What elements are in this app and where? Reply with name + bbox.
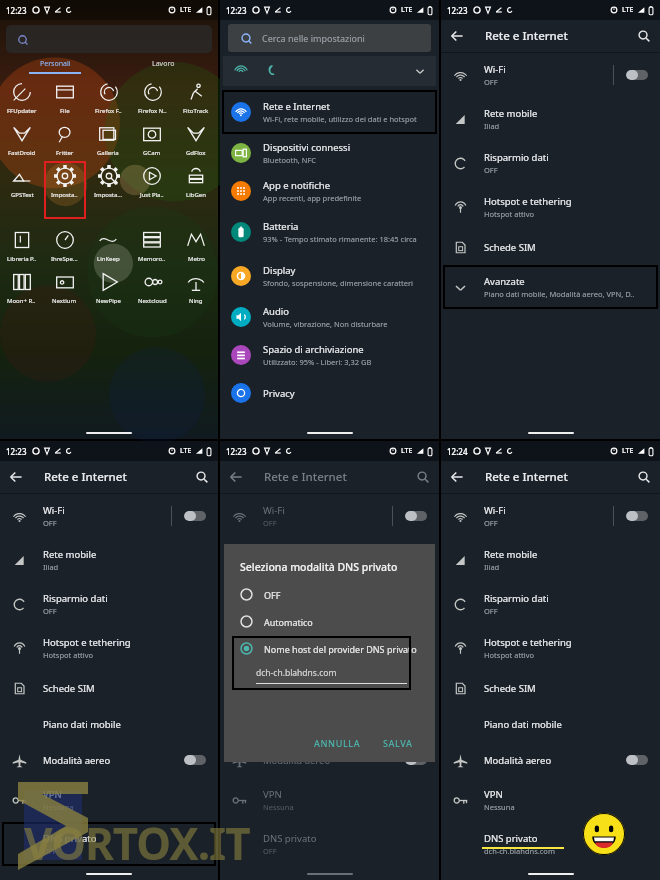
button[interactable]: Firefox F.. [94, 79, 123, 115]
button[interactable]: Display [220, 254, 439, 298]
button[interactable]: Spazio di archiviazione [220, 336, 439, 374]
button[interactable]: Cerca [6, 25, 212, 53]
button[interactable]: GPSTest [9, 163, 35, 199]
button[interactable]: Dispositivi connessi [220, 134, 439, 172]
button[interactable]: Fritter [52, 121, 78, 157]
button[interactable]: VPN [0, 778, 218, 822]
button[interactable]: Indietro [441, 461, 473, 493]
button[interactable]: Wi-Fi toggle [626, 511, 648, 521]
button[interactable]: Indietro [220, 461, 252, 493]
button[interactable]: FitoTrack [182, 79, 210, 115]
button[interactable]: Wi-Fi toggle [184, 511, 206, 521]
button[interactable]: Metro [183, 227, 209, 263]
button[interactable]: Indietro [0, 461, 32, 493]
button[interactable]: Wi-Fi toggle [626, 70, 648, 80]
staticText: VPN [263, 788, 282, 801]
button[interactable]: Modalità aereo toggle [184, 755, 206, 765]
button[interactable]: FFUpdater [6, 79, 38, 115]
button[interactable]: Just Pla.. [139, 163, 165, 199]
button[interactable]: Hotspot e tethering [0, 626, 218, 670]
button[interactable]: Nextium [51, 269, 78, 305]
button[interactable]: VPN [441, 778, 660, 822]
staticText: Schede SIM [484, 682, 536, 695]
button[interactable]: Piano dati mobile [0, 706, 218, 742]
button[interactable]: OFF [240, 588, 419, 601]
button[interactable]: Cerca nelle impostazioni [228, 24, 431, 52]
button[interactable]: Rete e Internet [220, 90, 439, 134]
staticText: OFF [484, 77, 498, 87]
button[interactable]: DNS privato [220, 822, 439, 866]
button[interactable]: Audio [220, 298, 439, 336]
button[interactable]: Risparmio dati [441, 141, 660, 185]
button[interactable]: Imposta... [93, 163, 124, 199]
button[interactable]: Moon+ R.. [6, 269, 37, 305]
button[interactable]: Indietro [441, 20, 473, 52]
button[interactable]: App e notifiche [220, 172, 439, 210]
button[interactable]: VPN [220, 778, 439, 822]
button[interactable]: Rete mobile [0, 538, 218, 582]
button[interactable]: Libreria P.. [6, 227, 38, 263]
button[interactable]: Wi-Fi toggle [405, 511, 427, 521]
button[interactable]: GdFlox [183, 121, 209, 157]
button[interactable]: File [52, 79, 78, 115]
staticText: 12:24 [447, 446, 468, 457]
button[interactable]: Hotspot e tethering [441, 626, 660, 670]
button[interactable]: Cerca [628, 20, 660, 52]
button[interactable]: Batteria [220, 210, 439, 254]
button[interactable]: IhreSpe... [50, 227, 79, 263]
button[interactable]: Modalità aereo [0, 742, 218, 778]
button[interactable]: Hotspot e tethering [220, 626, 439, 670]
button[interactable]: FastDroid [7, 121, 37, 157]
staticText: Hotspot attivo [263, 650, 314, 660]
button[interactable]: Risparmio dati [220, 582, 439, 626]
button[interactable]: Piano dati mobile [220, 706, 439, 742]
button[interactable]: Firefox N.. [137, 79, 168, 115]
button[interactable]: Schede SIM [0, 670, 218, 706]
button[interactable]: SALVA [377, 734, 419, 752]
button[interactable]: Wi-Fi [441, 494, 660, 538]
button[interactable]: Avanzate [441, 265, 660, 309]
button[interactable]: Imposta.. [50, 163, 79, 199]
button[interactable]: Schede SIM [441, 229, 660, 265]
button[interactable]: Rete mobile [441, 97, 660, 141]
button[interactable]: Risparmio dati [441, 582, 660, 626]
button[interactable]: Modalità aereo toggle [626, 755, 648, 765]
button[interactable]: LinKeep [95, 227, 121, 263]
button[interactable]: NewPipe [95, 269, 122, 305]
button[interactable]: ANNULLA [308, 734, 367, 752]
button[interactable]: Wi-Fi [441, 53, 660, 97]
button[interactable] [223, 56, 436, 86]
staticText: File [60, 107, 70, 115]
button[interactable]: Memoro.. [137, 227, 167, 263]
button[interactable]: LibGen [183, 163, 209, 199]
button[interactable]: DNS privato [441, 822, 660, 866]
button[interactable]: Modalità aereo toggle [405, 755, 427, 765]
staticText: LTE [401, 5, 413, 15]
button[interactable]: Rete mobile [441, 538, 660, 582]
button[interactable]: Risparmio dati [0, 582, 218, 626]
button[interactable]: Piano dati mobile [441, 706, 660, 742]
button[interactable]: Rete mobile [220, 538, 439, 582]
button[interactable]: Schede SIM [441, 670, 660, 706]
button[interactable]: Nextcloud [137, 269, 168, 305]
button[interactable]: Modalità aereo [441, 742, 660, 778]
button[interactable]: Emoji [583, 813, 625, 855]
button[interactable]: Galleria [95, 121, 121, 157]
button[interactable]: Wi-Fi [220, 494, 439, 538]
staticText: ANNULLA [314, 737, 361, 749]
button[interactable]: Cerca [407, 461, 439, 493]
button[interactable]: DNS privato [0, 822, 218, 866]
button[interactable]: Privacy [220, 374, 439, 412]
button[interactable]: Schede SIM [220, 670, 439, 706]
button[interactable]: Cerca [628, 461, 660, 493]
button[interactable]: Automatico [240, 615, 419, 628]
button[interactable]: Ning [183, 269, 209, 305]
button[interactable]: Modalità aereo [220, 742, 439, 778]
staticText: Libreria P.. [7, 255, 37, 263]
button[interactable]: Hotspot e tethering [441, 185, 660, 229]
button[interactable]: GCam [139, 121, 165, 157]
button[interactable]: Wi-Fi [0, 494, 218, 538]
button[interactable]: Nome host del provider DNS privato [240, 642, 419, 655]
button[interactable]: Cerca [186, 461, 218, 493]
